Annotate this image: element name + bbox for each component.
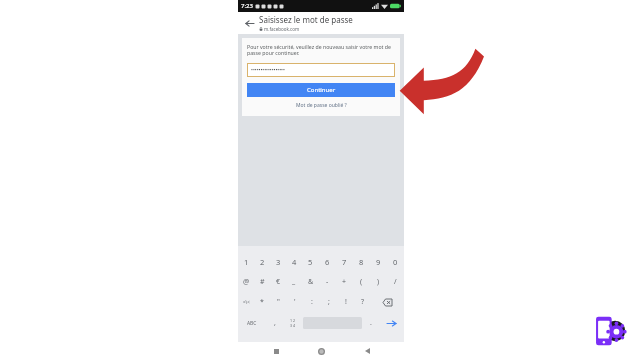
staticText: ? xyxy=(361,297,365,307)
staticText: Saisissez le mot de passe xyxy=(259,14,353,25)
staticText: 1 2 xyxy=(290,318,296,323)
button[interactable]: Mot de passe oublié ? xyxy=(247,102,395,109)
button[interactable]: Back xyxy=(242,16,256,30)
staticText: 7:23 xyxy=(241,2,253,10)
button[interactable]: & xyxy=(302,272,319,292)
staticText: m.facebook.com xyxy=(264,26,300,32)
staticText: 0 xyxy=(393,257,398,267)
staticText: 7 xyxy=(342,257,347,267)
staticText: ! xyxy=(345,297,347,307)
staticText: ' xyxy=(294,297,296,307)
staticText: 3 4 xyxy=(290,323,296,328)
staticText: & xyxy=(308,277,314,287)
staticText: / xyxy=(394,277,397,287)
button[interactable]: ( xyxy=(353,272,370,292)
button[interactable]: ? xyxy=(354,292,371,312)
button[interactable]: , xyxy=(266,312,283,334)
staticText: - xyxy=(326,277,329,287)
staticText: ; xyxy=(328,297,330,307)
staticText: Pour votre sécurité, veuillez de nouveau… xyxy=(247,43,395,57)
button[interactable]: : xyxy=(303,292,320,312)
staticText: ( xyxy=(360,277,363,287)
button[interactable]: Backspace xyxy=(371,292,404,312)
button[interactable]: 8 xyxy=(353,252,370,272)
button[interactable]: 1 xyxy=(238,252,254,272)
button[interactable]: 3 xyxy=(270,252,286,272)
staticText: 2 xyxy=(260,257,265,267)
button[interactable]: Recent apps xyxy=(268,343,284,359)
staticText: 5 xyxy=(308,257,313,267)
staticText: Mot de passe oublié ? xyxy=(296,102,347,109)
staticText: + xyxy=(342,277,347,287)
button[interactable]: Home xyxy=(313,343,329,359)
staticText: " xyxy=(277,297,280,307)
button[interactable]: ABC xyxy=(238,312,266,334)
button[interactable]: . xyxy=(362,312,379,334)
button[interactable]: ' xyxy=(286,292,303,312)
button[interactable]: Enter xyxy=(379,312,404,334)
button[interactable]: 5 xyxy=(302,252,319,272)
button[interactable]: Numbers xyxy=(283,312,303,334)
staticText: : xyxy=(311,297,313,307)
staticText: 3 xyxy=(276,257,281,267)
staticText: 9 xyxy=(376,257,381,267)
button[interactable]: " xyxy=(270,292,286,312)
staticText: # xyxy=(260,277,265,287)
button[interactable]: # xyxy=(254,272,270,292)
staticText: @ xyxy=(243,277,250,287)
button[interactable]: @ xyxy=(238,272,254,292)
button[interactable]: 0 xyxy=(387,252,404,272)
button[interactable]: + xyxy=(336,272,353,292)
staticText: 6 xyxy=(325,257,330,267)
button[interactable]: ; xyxy=(320,292,337,312)
staticText: , xyxy=(274,318,276,328)
button[interactable]: •••••••••••••••••• xyxy=(247,63,395,77)
button[interactable]: 9 xyxy=(370,252,387,272)
button[interactable]: ! xyxy=(337,292,354,312)
button[interactable]: * xyxy=(254,292,270,312)
staticText: * xyxy=(260,297,264,307)
staticText: •••••••••••••••••• xyxy=(251,67,285,74)
staticText: € xyxy=(276,277,281,287)
button[interactable]: =\< xyxy=(238,292,254,312)
staticText: _ xyxy=(292,277,296,287)
button[interactable]: 6 xyxy=(319,252,336,272)
button[interactable]: 2 xyxy=(254,252,270,272)
other: App logo xyxy=(588,308,634,354)
staticText: ) xyxy=(377,277,380,287)
staticText: Continuer xyxy=(307,86,336,94)
staticText: 4 xyxy=(292,257,297,267)
staticText: 8 xyxy=(359,257,364,267)
button[interactable]: ) xyxy=(370,272,387,292)
button[interactable]: _ xyxy=(286,272,302,292)
staticText: . xyxy=(370,318,372,328)
button[interactable]: Back xyxy=(359,343,375,359)
button[interactable]: 7 xyxy=(336,252,353,272)
button[interactable]: 4 xyxy=(286,252,302,272)
button[interactable]: - xyxy=(319,272,336,292)
button[interactable]: € xyxy=(270,272,286,292)
button[interactable]: / xyxy=(387,272,404,292)
staticText: 1 xyxy=(244,257,249,267)
staticText: ABC xyxy=(247,320,257,327)
staticText: =\< xyxy=(243,299,250,305)
button[interactable]: Continuer xyxy=(247,83,395,97)
